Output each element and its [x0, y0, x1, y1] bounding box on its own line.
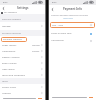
staticText: Settings — [17, 6, 29, 10]
button[interactable]: Delivery Address — [0, 54, 45, 60]
button[interactable]: Payment Methods — [1, 37, 27, 42]
staticText: Credit or Debit Card — [51, 32, 72, 35]
button[interactable]: Net banking — [49, 37, 96, 44]
staticText: Inactive — [32, 44, 40, 47]
staticText: PAYMENT SETTINGS — [2, 32, 21, 35]
button[interactable]: Credit or Debit Card — [49, 30, 96, 37]
staticText: Learn more — [63, 17, 73, 19]
button[interactable]: MY ACCOUNT — [0, 11, 45, 14]
button[interactable]: Back — [1, 6, 5, 10]
button[interactable]: Refer a friend — [0, 60, 45, 66]
staticText: Terms and Conditions — [2, 74, 26, 77]
staticText: Delivery Address — [2, 56, 20, 59]
button[interactable]: Order History — [0, 42, 45, 48]
staticText: LEGAL — [2, 80, 9, 83]
staticText: Payment Methods — [3, 38, 22, 41]
staticText: Licenses — [2, 92, 11, 95]
button[interactable]: Privacy Policy — [0, 84, 45, 90]
staticText: Privacy Policy — [2, 86, 17, 89]
button[interactable]: Notifications — [0, 48, 45, 54]
button[interactable]: Visa ...4242 — [50, 22, 95, 28]
button[interactable]: Help Center — [0, 66, 45, 72]
staticText: Notifications — [2, 50, 16, 53]
button[interactable]: Manage — [0, 22, 45, 30]
staticText: Manage — [2, 25, 11, 28]
staticText: 9:41 — [3, 1, 8, 4]
button[interactable]: Licenses — [0, 90, 45, 96]
staticText: Refer a friend — [2, 62, 17, 65]
staticText: 9:41 — [52, 1, 57, 4]
button[interactable]: Terms and Conditions — [0, 72, 45, 78]
staticText: Visa ...4242 — [52, 24, 63, 27]
staticText: Order History — [2, 44, 17, 47]
staticText: Net banking — [51, 39, 64, 42]
staticText: Choose a payment method for this order — [51, 14, 89, 17]
staticText: MY ACCOUNT — [4, 11, 17, 14]
staticText: Sounds — [32, 50, 40, 53]
button[interactable]: Back — [50, 7, 54, 11]
staticText: Help Center — [2, 68, 15, 71]
staticText: SHIPPING ADDRESS — [2, 18, 21, 21]
staticText: Payment Info — [63, 7, 83, 11]
